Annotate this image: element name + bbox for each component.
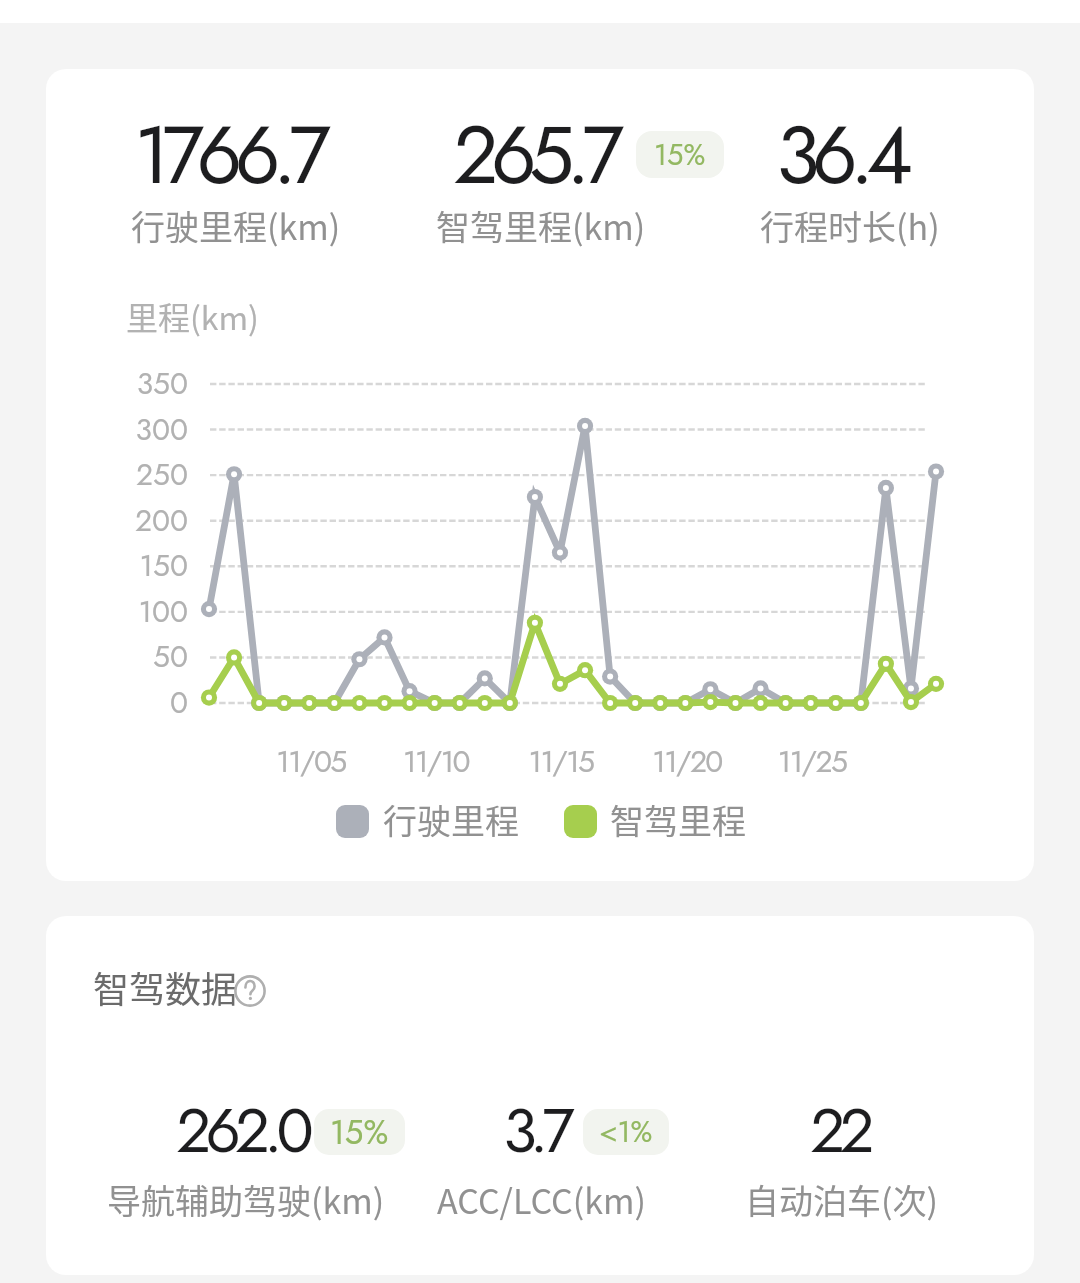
- staticText: 36.4: [776, 97, 906, 213]
- staticText: <1%: [599, 1111, 653, 1153]
- staticText: 1766.7: [134, 97, 324, 213]
- staticText: 3.7: [503, 1086, 569, 1176]
- staticText: 11/20: [617, 740, 757, 783]
- button[interactable]: 行程时长(h): [760, 201, 940, 250]
- staticText: 250: [46, 453, 188, 496]
- staticText: 11/05: [241, 740, 381, 783]
- staticText: 300: [46, 408, 188, 451]
- button[interactable]: 行驶里程(km): [131, 201, 341, 250]
- staticText: 262.0: [176, 1086, 308, 1176]
- button[interactable]: 15%: [636, 131, 724, 178]
- staticText: 265.7: [453, 97, 617, 213]
- button[interactable]: [336, 805, 369, 838]
- button[interactable]: ACC/LCC(km): [437, 1175, 646, 1224]
- staticText: 行程时长(h): [760, 201, 940, 250]
- staticText: 11/10: [366, 740, 506, 783]
- staticText: 11/15: [491, 740, 631, 783]
- staticText: 自动泊车(次): [745, 1175, 938, 1224]
- button[interactable]: 36.4: [776, 97, 906, 213]
- button[interactable]: 智驾数据: [93, 961, 238, 1013]
- staticText: 智驾数据: [93, 961, 238, 1013]
- button[interactable]: 智驾里程(km): [436, 201, 646, 250]
- staticText: 150: [46, 544, 188, 587]
- staticText: 100: [46, 590, 188, 633]
- staticText: 行驶里程: [383, 795, 519, 844]
- staticText: 智驾里程: [610, 795, 746, 844]
- staticText: 50: [46, 635, 188, 678]
- button[interactable]: 自动泊车(次): [745, 1175, 938, 1224]
- button[interactable]: <1%: [583, 1109, 669, 1155]
- button[interactable]: 3.7: [503, 1086, 569, 1176]
- staticText: 200: [46, 499, 188, 542]
- button[interactable]: 265.7: [453, 97, 617, 213]
- staticText: 0: [46, 681, 188, 724]
- staticText: 15%: [654, 134, 706, 176]
- button[interactable]: 15%: [314, 1109, 405, 1155]
- button[interactable]: 智驾里程: [610, 795, 746, 844]
- staticText: 15%: [330, 1109, 389, 1155]
- staticText: 里程(km): [126, 293, 259, 339]
- button[interactable]: 行驶里程: [383, 795, 519, 844]
- staticText: ACC/LCC(km): [437, 1175, 646, 1224]
- button[interactable]: Help: about assisted driving data: [233, 974, 267, 1008]
- staticText: 350: [46, 362, 188, 405]
- staticText: 22: [810, 1086, 869, 1176]
- staticText: 导航辅助驾驶(km): [107, 1175, 385, 1224]
- button[interactable]: 22: [810, 1086, 869, 1176]
- staticText: 智驾里程(km): [436, 201, 646, 250]
- button[interactable]: [564, 805, 597, 838]
- button[interactable]: 262.0: [176, 1086, 308, 1176]
- staticText: 行驶里程(km): [131, 201, 341, 250]
- button[interactable]: 导航辅助驾驶(km): [107, 1175, 385, 1224]
- button[interactable]: 1766.7: [134, 97, 324, 213]
- staticText: 11/25: [742, 740, 882, 783]
